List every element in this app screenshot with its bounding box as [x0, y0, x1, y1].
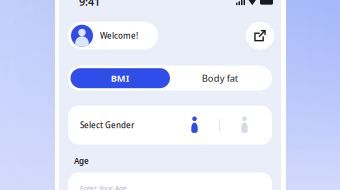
staticText: Welcome!: [100, 30, 138, 41]
staticText: 9:41: [79, 0, 100, 9]
button[interactable]: Female: [240, 116, 249, 135]
staticText: Select Gender: [80, 120, 134, 130]
staticText: BMI: [111, 72, 130, 84]
button[interactable]: Share: [246, 22, 274, 50]
staticText: Enter Your Age: [80, 184, 127, 190]
button[interactable]: Male: [190, 116, 199, 135]
staticText: Age: [74, 156, 89, 166]
button[interactable]: Welcome!: [68, 22, 158, 50]
staticText: Body fat: [202, 72, 238, 84]
button[interactable]: BMI: [70, 68, 170, 88]
button[interactable]: Body fat: [170, 68, 269, 88]
